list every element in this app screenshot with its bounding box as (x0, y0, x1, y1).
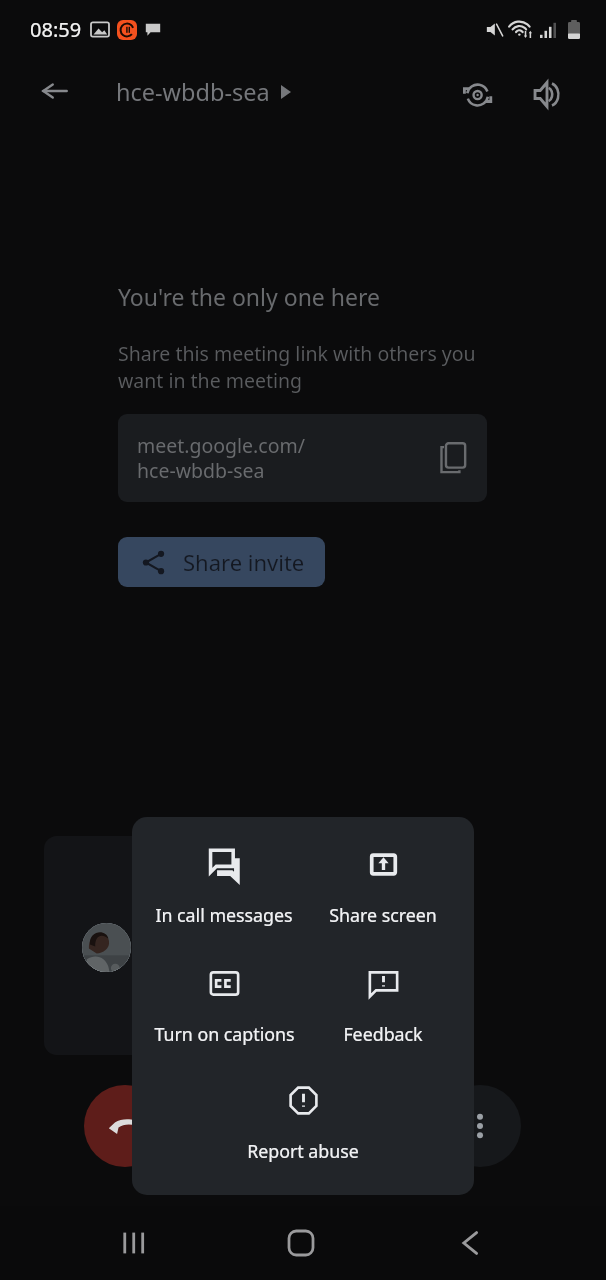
staticText: Turn on captions (154, 1022, 295, 1046)
staticText: In call messages (155, 903, 293, 927)
button[interactable]: Recents (110, 1219, 158, 1267)
button[interactable]: Share screen (303, 849, 463, 927)
staticText: Feedback (343, 1022, 423, 1046)
staticText: hce-wbdb-sea (116, 76, 270, 108)
staticText: You're the only one here (118, 281, 380, 312)
button[interactable]: Back (446, 1219, 494, 1267)
staticText: Share screen (329, 903, 437, 927)
button[interactable]: Switch camera (453, 70, 501, 118)
staticText: Share this meeting link with others you … (118, 340, 476, 394)
button[interactable]: In call messages (144, 849, 304, 927)
staticText: meet.google.com/ hce-wbdb-sea (137, 432, 305, 484)
button[interactable]: Share invite (118, 537, 325, 587)
button[interactable]: Leave call (84, 1085, 166, 1167)
staticText: 08:59 (30, 16, 82, 43)
button[interactable]: meet.google.com/ hce-wbdb-sea (118, 414, 487, 502)
staticText: Report abuse (247, 1139, 359, 1163)
button[interactable]: Turn on captions (144, 968, 304, 1046)
button[interactable]: Report abuse (223, 1085, 383, 1163)
button[interactable]: Home (277, 1219, 325, 1267)
button[interactable]: Back (33, 69, 77, 113)
other: Copy link (437, 442, 469, 474)
button[interactable]: Feedback (303, 968, 463, 1046)
staticText: Share invite (183, 547, 305, 577)
button[interactable]: hce-wbdb-sea (116, 76, 291, 108)
button[interactable]: More options (439, 1085, 521, 1167)
button[interactable]: Speaker (523, 70, 571, 118)
